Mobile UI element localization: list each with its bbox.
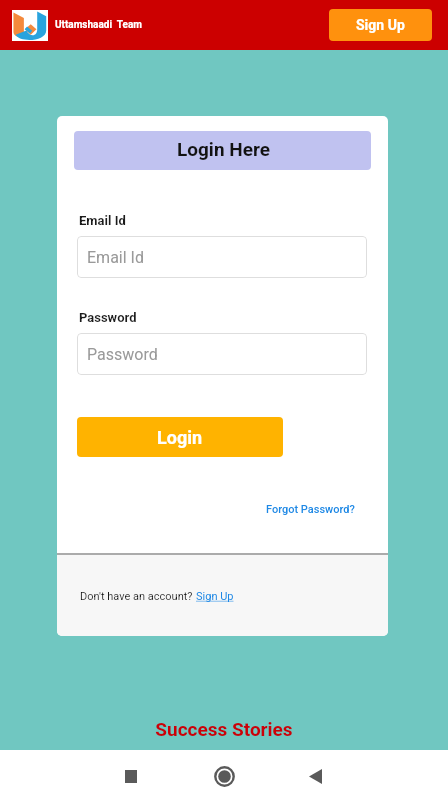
staticText: Login Here <box>177 138 270 160</box>
button[interactable]: Forgot Password? <box>266 503 355 516</box>
button[interactable]: Email Id <box>77 236 367 278</box>
button[interactable]: Sign Up <box>196 590 234 603</box>
staticText: Don't have an account? <box>80 590 196 603</box>
staticText: Email Id <box>87 248 144 267</box>
staticText: Email Id <box>79 213 126 228</box>
staticText: Login <box>157 427 203 448</box>
staticText: Success Stories <box>0 718 448 740</box>
staticText: Password <box>87 345 158 364</box>
button[interactable]: Sign Up <box>329 9 432 41</box>
staticText: Uttamshaadi Team <box>55 19 142 31</box>
button[interactable]: Back <box>285 750 345 800</box>
button[interactable]: Home <box>194 750 254 800</box>
button[interactable]: Login <box>77 417 283 457</box>
button[interactable]: Recent apps <box>101 750 161 800</box>
staticText: Password <box>79 310 137 325</box>
staticText: Sign Up <box>356 17 405 33</box>
button[interactable]: Password <box>77 333 367 375</box>
